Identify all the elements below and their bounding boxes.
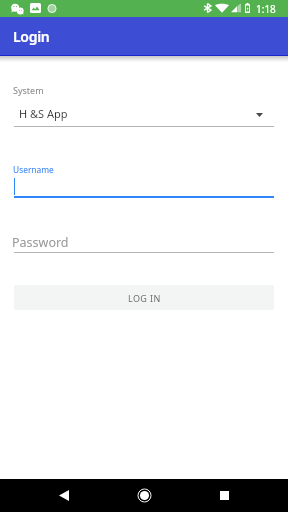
staticText: 1:18 [256,2,276,16]
staticText: System [13,84,44,96]
button[interactable]: H &S App [0,102,288,127]
staticText: Login [13,27,50,46]
button[interactable]: LOG IN [14,285,274,310]
staticText: LOG IN [128,292,161,304]
button[interactable]: Home [120,479,168,512]
button[interactable]: Password [0,230,288,252]
staticText: H &S App [19,106,68,121]
staticText: Username [13,164,54,175]
staticText: Password [12,234,69,251]
button[interactable]: Back [40,479,88,512]
button[interactable] [0,176,288,197]
button[interactable]: Recent apps [200,479,248,512]
